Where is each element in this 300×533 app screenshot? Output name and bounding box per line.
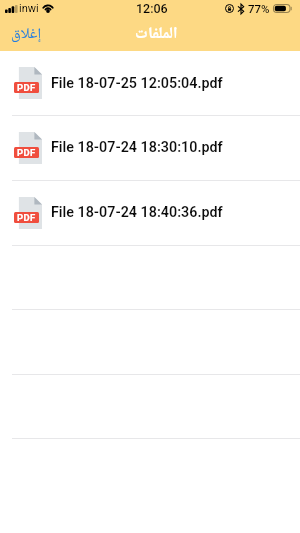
staticText: File 18-07-24 18:40:36.pdf [51, 204, 223, 221]
staticText: PDF [17, 212, 36, 223]
staticText: PDF [17, 147, 36, 158]
staticText: الملفات [135, 23, 178, 45]
button[interactable]: PDF [0, 51, 300, 115]
staticText: File 18-07-24 18:30:10.pdf [51, 139, 223, 156]
button[interactable] [0, 374, 300, 439]
button[interactable]: PDF [0, 180, 300, 245]
button[interactable]: إغلاق [0, 19, 53, 47]
staticText: 77% [248, 2, 270, 15]
staticText: File 18-07-25 12:05:04.pdf [51, 75, 223, 92]
staticText: inwi [19, 2, 39, 15]
button[interactable]: PDF [0, 115, 300, 180]
staticText: 12:06 [136, 1, 168, 16]
button[interactable] [0, 245, 300, 310]
staticText: إغلاق [11, 24, 42, 42]
staticText: PDF [17, 82, 36, 93]
